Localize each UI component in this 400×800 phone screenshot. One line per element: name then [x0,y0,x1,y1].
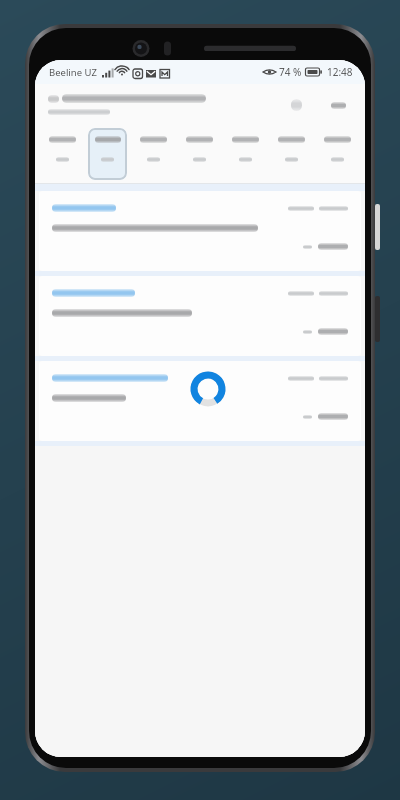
button[interactable] [179,128,219,180]
button[interactable]: Edit [279,88,313,122]
button[interactable] [43,128,82,180]
button[interactable] [88,128,127,180]
button[interactable] [39,276,361,356]
staticText: 74 % [279,65,302,79]
button[interactable] [225,128,265,180]
button[interactable]: More options [321,88,355,122]
button[interactable] [133,128,173,180]
staticText: 12:48 [327,65,353,79]
button[interactable] [39,191,361,271]
button[interactable] [271,128,311,180]
button[interactable] [39,361,361,441]
staticText: Beeline UZ [49,66,97,79]
button[interactable] [317,128,357,180]
